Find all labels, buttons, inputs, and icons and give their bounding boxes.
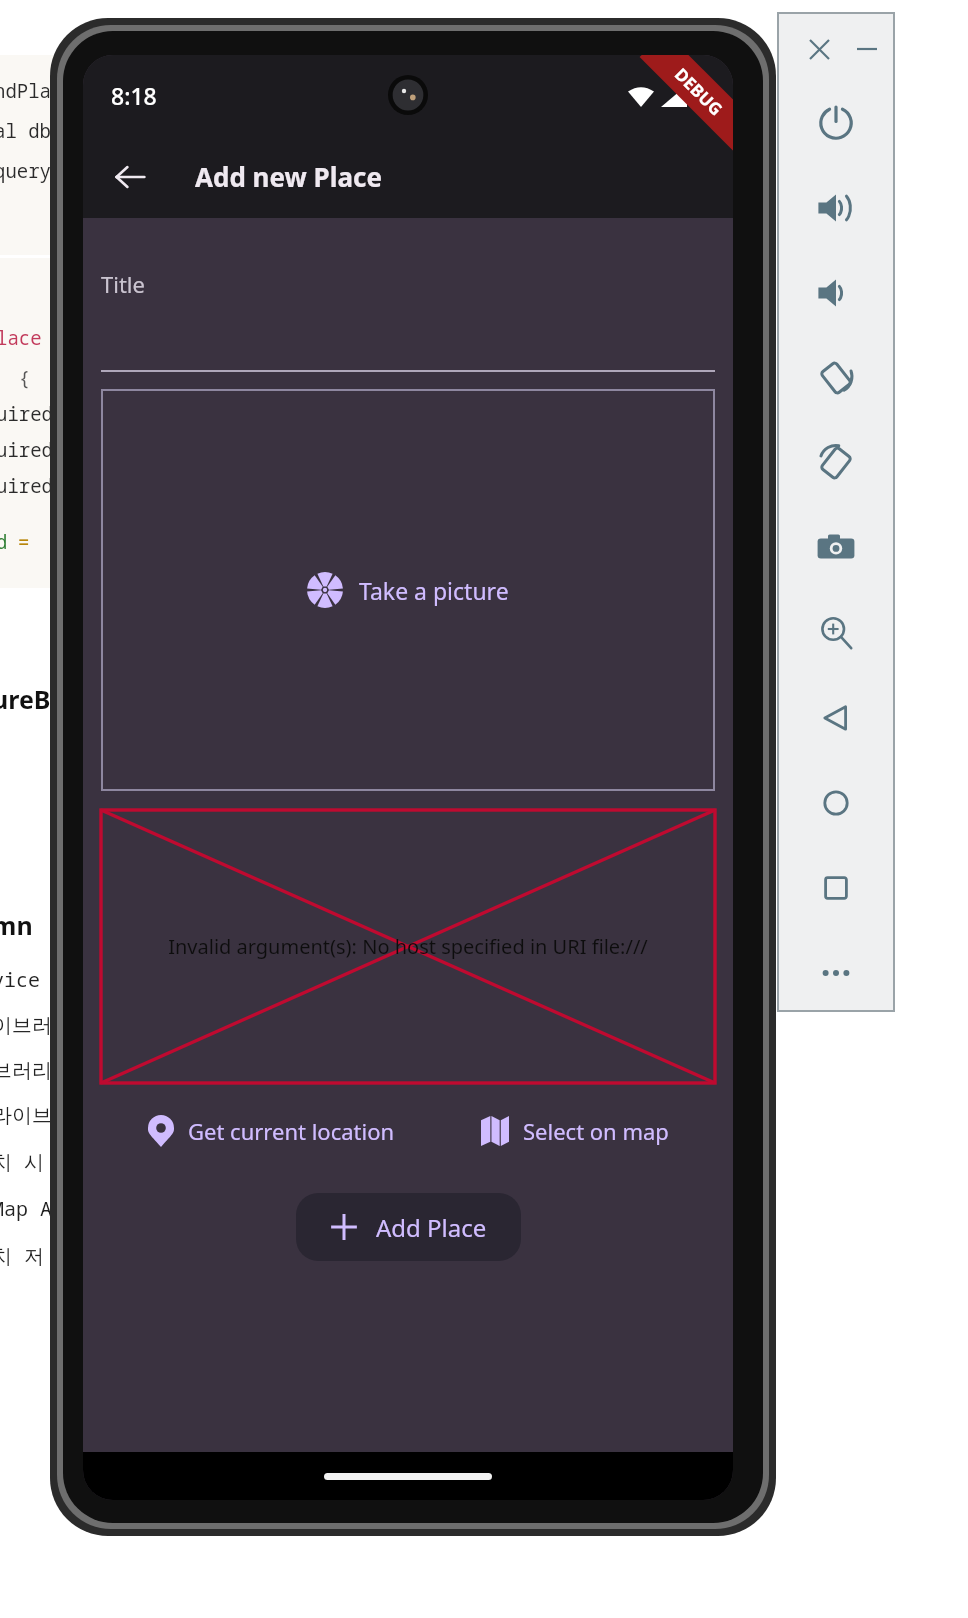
staticText: 라이브	[0, 1103, 52, 1128]
staticText: Invalid argument(s): No host specified i…	[168, 933, 648, 960]
button[interactable]: Back	[806, 685, 866, 751]
staticText: 치 시	[0, 1148, 44, 1175]
staticText: uired	[0, 437, 54, 463]
staticText: Title	[101, 269, 145, 299]
button[interactable]: Back	[101, 148, 159, 206]
button[interactable]: Volume up	[806, 175, 866, 241]
staticText: mn	[0, 908, 33, 942]
staticText: Add Place	[376, 1211, 487, 1244]
staticText: 8:18	[111, 80, 157, 111]
button[interactable]: Minimize	[850, 32, 884, 66]
staticText: lace	[0, 325, 42, 351]
button[interactable]: Zoom	[806, 600, 866, 666]
staticText: d	[0, 529, 8, 555]
staticText: =	[18, 529, 30, 555]
staticText: 브러리	[0, 1058, 52, 1083]
button[interactable]: Rotate right	[806, 430, 866, 496]
staticText: query	[0, 158, 52, 184]
button[interactable]: Screenshot	[806, 515, 866, 581]
staticText: uired	[0, 401, 54, 427]
staticText: Take a picture	[359, 575, 509, 606]
button[interactable]: Volume down	[806, 260, 866, 326]
button[interactable]: Title	[101, 262, 715, 372]
button[interactable]: Select on map	[467, 1108, 683, 1154]
button[interactable]: Overview	[806, 855, 866, 921]
staticText: {	[0, 365, 31, 391]
staticText: 이브러	[0, 1013, 52, 1038]
button[interactable]: Rotate left	[806, 345, 866, 411]
button[interactable]: Take a picture	[101, 389, 715, 791]
staticText: ureB	[0, 682, 51, 716]
button[interactable]: Add Place	[296, 1193, 521, 1261]
staticText: uired	[0, 473, 54, 499]
staticText: DEBUG	[670, 63, 728, 121]
staticText: Get current location	[188, 1116, 395, 1146]
button[interactable]: Close	[802, 32, 836, 66]
staticText: Add new Place	[195, 159, 382, 194]
button[interactable]: Power	[806, 90, 866, 156]
staticText: ndPla	[0, 78, 52, 104]
button[interactable]: Home	[806, 770, 866, 836]
staticText: vice	[0, 966, 40, 993]
staticText: Map A	[0, 1195, 52, 1222]
staticText: Select on map	[523, 1116, 669, 1146]
button[interactable]: Get current location	[134, 1107, 409, 1155]
staticText: 치 저	[0, 1242, 44, 1269]
staticText: al db	[0, 118, 52, 144]
button[interactable]: More	[806, 940, 866, 1006]
